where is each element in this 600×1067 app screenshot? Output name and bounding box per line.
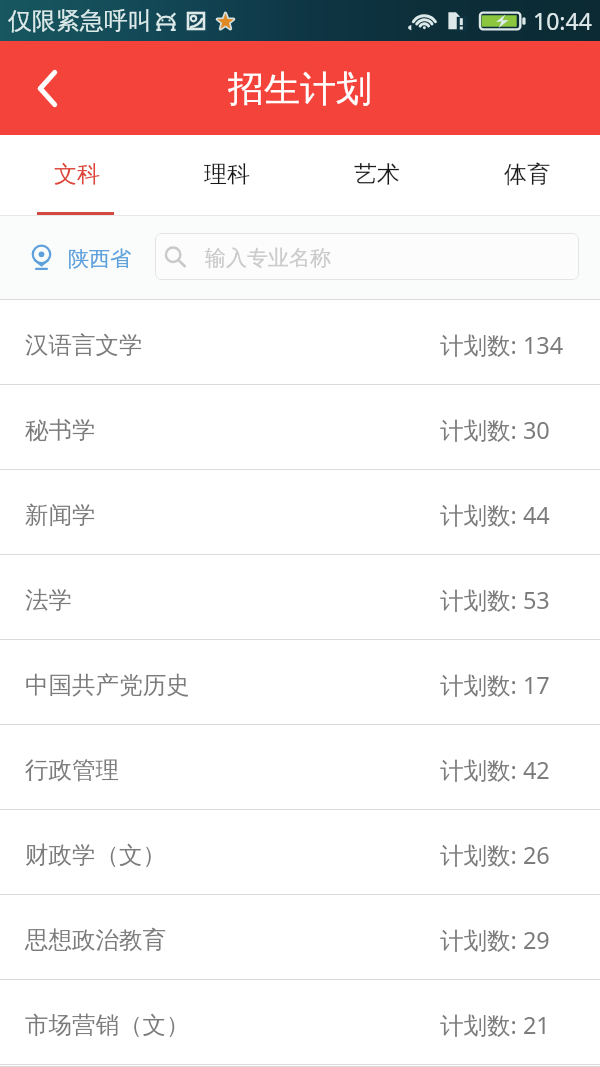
staticText: 计划数: 30	[440, 414, 550, 446]
staticText: 秘书学	[25, 415, 96, 445]
staticText: 计划数: 17	[440, 669, 550, 701]
staticText: 体育	[504, 160, 550, 189]
staticText: 中国共产党历史	[25, 670, 190, 700]
button[interactable]: 汉语言文学	[0, 300, 600, 385]
staticText: 10:44	[533, 5, 592, 36]
staticText: 计划数: 134	[440, 329, 564, 361]
button[interactable]: 中国共产党历史	[0, 640, 600, 725]
staticText: 财政学（文）	[25, 840, 166, 870]
staticText: 计划数: 29	[440, 924, 550, 956]
button[interactable]: 法学	[0, 555, 600, 640]
staticText: 计划数: 53	[440, 584, 550, 616]
staticText: 汉语言文学	[25, 330, 143, 360]
staticText: 思想政治教育	[25, 925, 166, 955]
staticText: 行政管理	[25, 755, 119, 785]
button[interactable]: 文科	[0, 135, 150, 216]
staticText: 新闻学	[25, 500, 96, 530]
button[interactable]: Back	[0, 41, 95, 135]
staticText: 文科	[54, 160, 100, 189]
staticText: 艺术	[354, 160, 400, 189]
staticText: 计划数: 21	[440, 1009, 550, 1041]
button[interactable]: 秘书学	[0, 385, 600, 470]
button[interactable]: 行政管理	[0, 725, 600, 810]
button[interactable]: 艺术	[300, 135, 450, 216]
button[interactable]: 新闻学	[0, 470, 600, 555]
staticText: 招生计划	[228, 66, 372, 111]
staticText: 输入专业名称	[205, 245, 331, 271]
staticText: 计划数: 42	[440, 754, 550, 786]
button[interactable]: 财政学（文）	[0, 810, 600, 895]
button[interactable]: 理科	[150, 135, 300, 216]
button[interactable]: 市场营销（文）	[0, 980, 600, 1065]
staticText: 理科	[204, 160, 250, 189]
button[interactable]: 陕西省	[32, 245, 131, 271]
staticText: 计划数: 26	[440, 839, 550, 871]
button[interactable]: 人力资源管理	[0, 1065, 600, 1067]
staticText: 市场营销（文）	[25, 1010, 190, 1040]
staticText: 仅限紧急呼叫	[8, 6, 152, 36]
staticText: 陕西省	[68, 246, 131, 272]
button[interactable]: 输入专业名称	[155, 233, 579, 280]
button[interactable]: 思想政治教育	[0, 895, 600, 980]
button[interactable]: 体育	[450, 135, 600, 216]
staticText: 计划数: 44	[440, 499, 550, 531]
staticText: 法学	[25, 585, 72, 615]
